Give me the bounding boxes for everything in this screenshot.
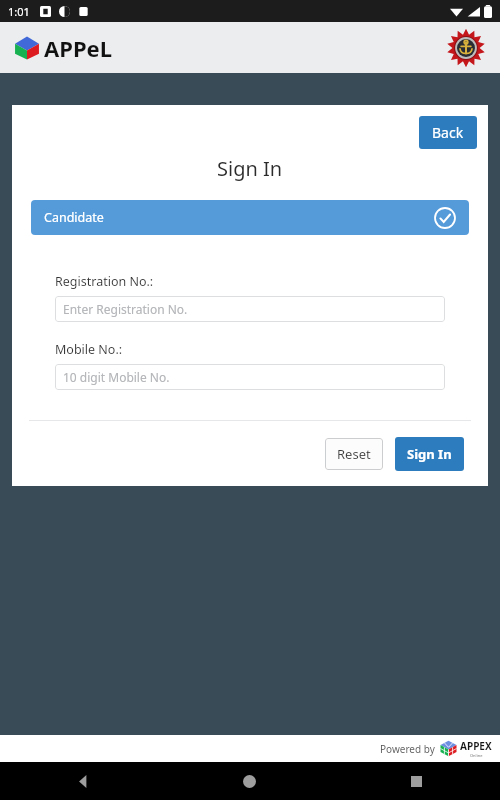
button[interactable]: 10 digit Mobile No. xyxy=(55,364,445,390)
staticText: Powered by xyxy=(380,742,435,756)
button[interactable]: Candidate xyxy=(31,200,469,235)
button[interactable]: Back xyxy=(0,762,166,800)
button[interactable]: Recent apps xyxy=(333,762,500,800)
button[interactable]: Home xyxy=(166,762,333,800)
staticText: Sign In xyxy=(217,155,283,182)
staticText: 10 digit Mobile No. xyxy=(63,369,170,385)
staticText: Enter Registration No. xyxy=(63,301,188,317)
staticText: Candidate xyxy=(44,209,104,226)
staticText: Back xyxy=(432,123,464,142)
staticText: Reset xyxy=(337,445,371,463)
staticText: Online xyxy=(470,753,483,758)
staticText: Mobile No.: xyxy=(55,341,123,358)
button[interactable]: Sign In xyxy=(395,437,464,471)
staticText: 1:01 xyxy=(8,4,30,19)
staticText: APPeL xyxy=(44,33,112,63)
button[interactable]: Back xyxy=(419,116,477,149)
staticText: Sign In xyxy=(407,445,452,463)
button[interactable]: Powered by xyxy=(380,739,492,758)
button[interactable]: APPeL xyxy=(14,33,112,63)
staticText: Registration No.: xyxy=(55,273,154,290)
button[interactable]: Reset xyxy=(325,438,383,470)
staticText: APPEX xyxy=(460,739,492,753)
button[interactable]: Enter Registration No. xyxy=(55,296,445,322)
button[interactable]: Organisation emblem xyxy=(444,26,488,70)
